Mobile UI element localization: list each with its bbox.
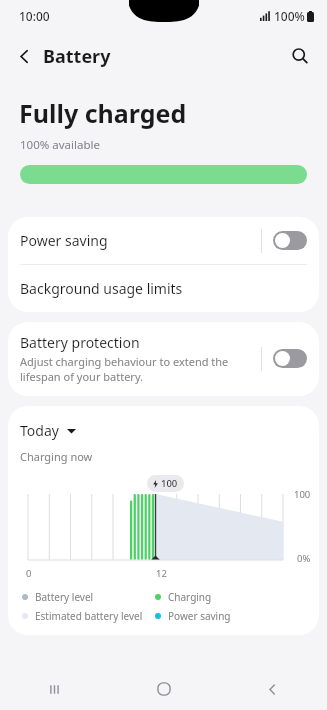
staticText: 0%: [297, 552, 311, 565]
button[interactable]: Toggle: [273, 231, 307, 250]
staticText: 12: [156, 567, 167, 580]
button[interactable]: Toggle: [273, 349, 307, 368]
staticText: Battery: [43, 44, 111, 69]
staticText: 100% available: [20, 137, 100, 153]
button[interactable]: Power saving: [8, 217, 319, 264]
staticText: 0: [26, 567, 32, 580]
staticText: 100%: [274, 8, 305, 24]
staticText: Battery protection: [20, 333, 140, 352]
staticText: Estimated battery level: [35, 609, 143, 623]
button[interactable]: Home: [109, 668, 218, 710]
button[interactable]: Back: [8, 38, 119, 75]
button[interactable]: Background usage limits: [8, 265, 319, 312]
staticText: 10:00: [19, 8, 50, 24]
staticText: Battery level: [35, 590, 94, 604]
staticText: Charging: [168, 590, 212, 604]
staticText: Power saving: [168, 609, 231, 623]
staticText: Adjust charging behaviour to extend the …: [20, 354, 253, 384]
staticText: Background usage limits: [20, 279, 183, 298]
staticText: Power saving: [20, 231, 261, 250]
staticText: 100: [161, 477, 178, 490]
button[interactable]: Back: [218, 668, 327, 710]
button[interactable]: Search: [283, 39, 317, 73]
button[interactable]: Recent apps: [0, 668, 109, 710]
staticText: Today: [20, 421, 59, 440]
button[interactable]: Battery protection: [8, 322, 319, 396]
button[interactable]: Today: [16, 418, 80, 443]
staticText: Fully charged: [19, 96, 187, 130]
staticText: 100: [294, 488, 311, 501]
staticText: Charging now: [20, 449, 93, 464]
